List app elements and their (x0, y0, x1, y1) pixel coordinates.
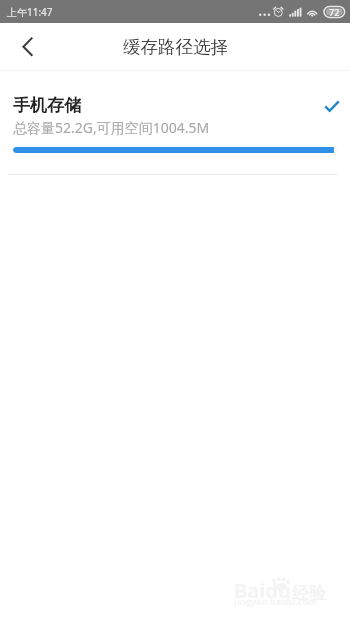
staticText: 总容量52.2G,可用空间1004.5M (13, 118, 210, 137)
staticText: jingyan.baidu.com (234, 595, 317, 607)
staticText: 72 (329, 6, 340, 18)
button[interactable]: Back (0, 23, 48, 70)
staticText: Baidu (234, 577, 291, 604)
button[interactable]: 手机存储 (0, 71, 350, 153)
staticText: 上午11:47 (7, 5, 53, 19)
staticText: 经验 (292, 583, 326, 604)
staticText: 缓存路径选择 (123, 36, 228, 58)
staticText: 手机存储 (13, 95, 81, 116)
